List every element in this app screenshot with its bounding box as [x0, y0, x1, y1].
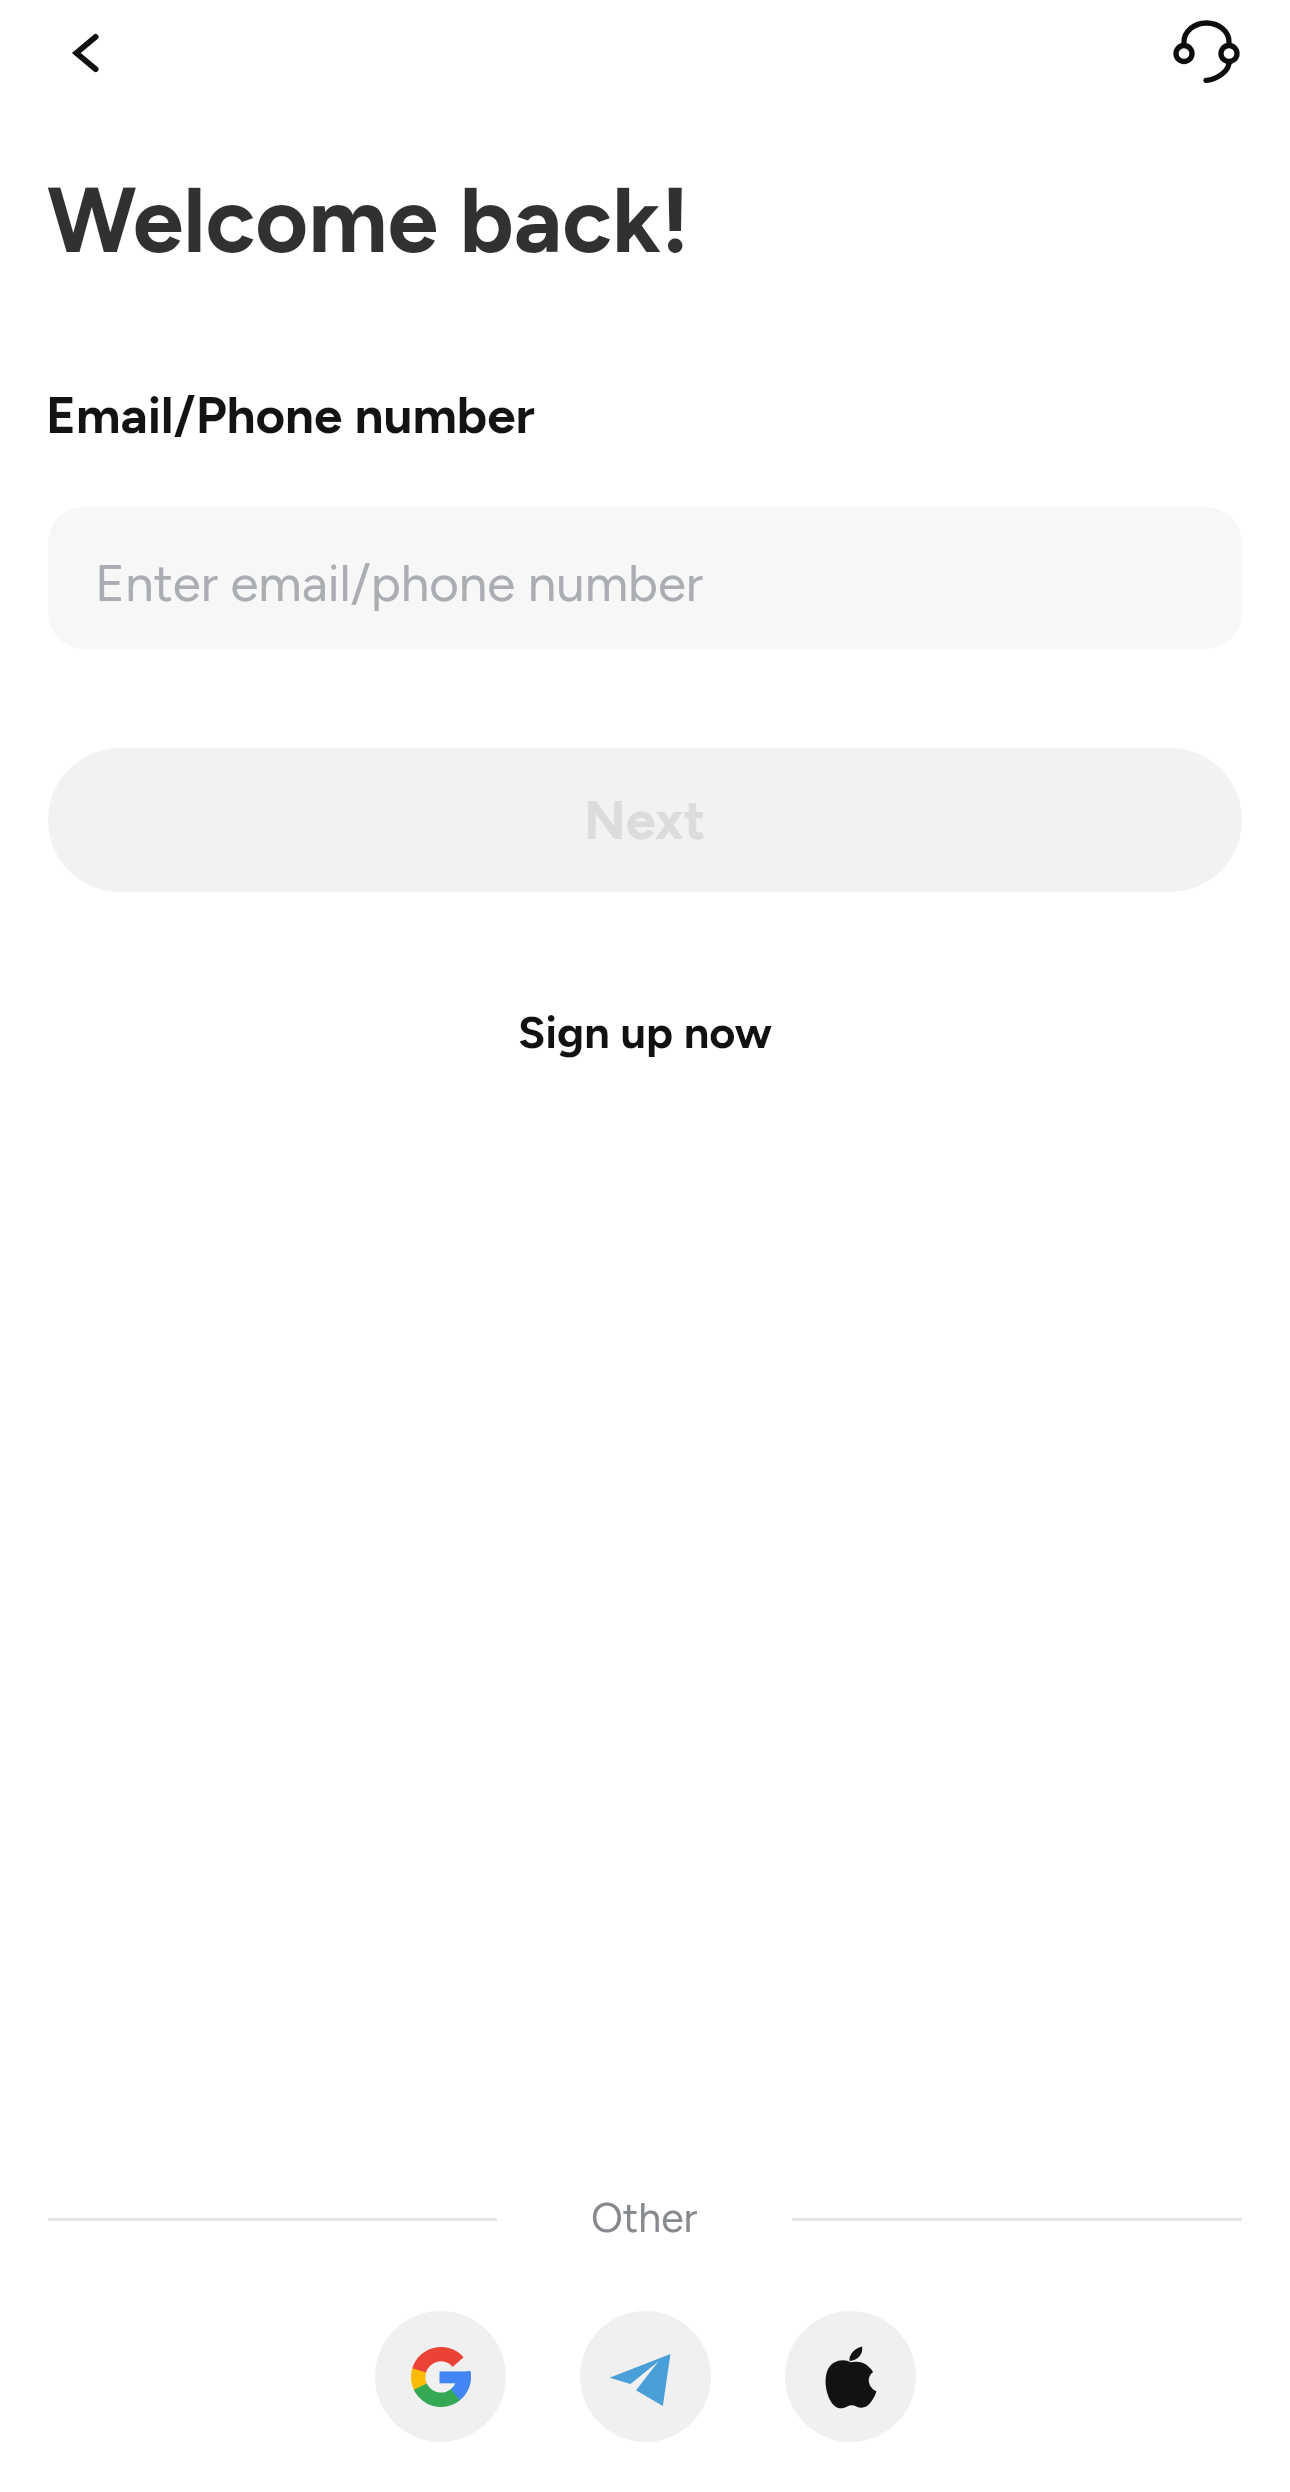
button[interactable]: Customer support [1147, 0, 1267, 113]
button[interactable]: Back [31, 0, 141, 108]
button[interactable]: Sign in with Apple [785, 2311, 916, 2442]
button[interactable]: Enter email/phone number [48, 507, 1242, 649]
staticText: Welcome back! [47, 166, 690, 275]
button[interactable]: Next [48, 748, 1242, 892]
staticText: Other [591, 2193, 698, 2242]
staticText: Enter email/phone number [95, 553, 703, 614]
button[interactable]: Sign up now [492, 990, 799, 1074]
staticText: Email/Phone number [46, 385, 535, 446]
staticText: Sign up now [518, 1005, 773, 1059]
button[interactable]: Sign in with Google [375, 2311, 506, 2442]
button[interactable]: Sign in with Telegram [580, 2311, 711, 2442]
staticText: Next [584, 788, 706, 853]
